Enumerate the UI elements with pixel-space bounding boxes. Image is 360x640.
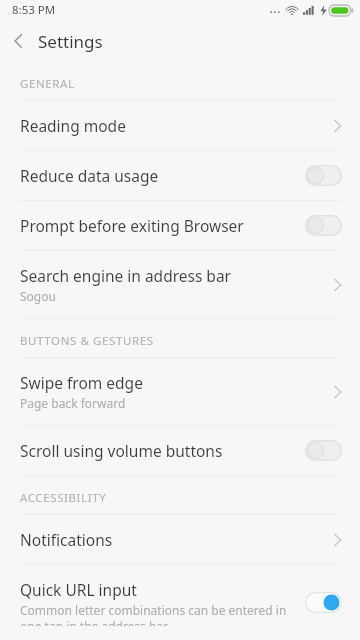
- button[interactable]: Back: [0, 27, 33, 55]
- staticText: BUTTONS & GESTURES: [20, 333, 154, 349]
- staticText: 8:53 PM: [12, 2, 56, 18]
- button[interactable]: Scroll using volume buttons: [0, 426, 360, 475]
- staticText: Search engine in address bar: [20, 265, 232, 286]
- staticText: Swipe from edge: [20, 372, 143, 393]
- staticText: Prompt before exiting Browser: [20, 215, 244, 236]
- button[interactable]: Reading mode: [0, 101, 360, 150]
- button[interactable]: Swipe from edge: [0, 358, 360, 425]
- button[interactable]: Toggle on: [305, 592, 342, 613]
- staticText: Page back forward: [20, 395, 126, 411]
- staticText: Quick URL input: [20, 579, 137, 600]
- staticText: Reading mode: [20, 115, 126, 136]
- button[interactable]: Toggle off: [305, 165, 342, 186]
- button[interactable]: Reduce data usage: [0, 151, 360, 200]
- staticText: Notifications: [20, 529, 113, 550]
- button[interactable]: Toggle off: [305, 440, 342, 461]
- button[interactable]: Toggle off: [305, 215, 342, 236]
- staticText: GENERAL: [20, 76, 75, 92]
- button[interactable]: Quick URL input: [0, 565, 360, 640]
- staticText: Reduce data usage: [20, 165, 159, 186]
- staticText: Settings: [38, 30, 103, 53]
- button[interactable]: Prompt before exiting Browser: [0, 201, 360, 250]
- button[interactable]: Notifications: [0, 515, 360, 564]
- staticText: ACCESSIBILITY: [20, 490, 107, 506]
- staticText: Sogou: [20, 288, 56, 304]
- button[interactable]: Search engine in address bar: [0, 251, 360, 318]
- staticText: Scroll using volume buttons: [20, 440, 223, 461]
- staticText: Common letter combinations can be entere…: [20, 602, 295, 626]
